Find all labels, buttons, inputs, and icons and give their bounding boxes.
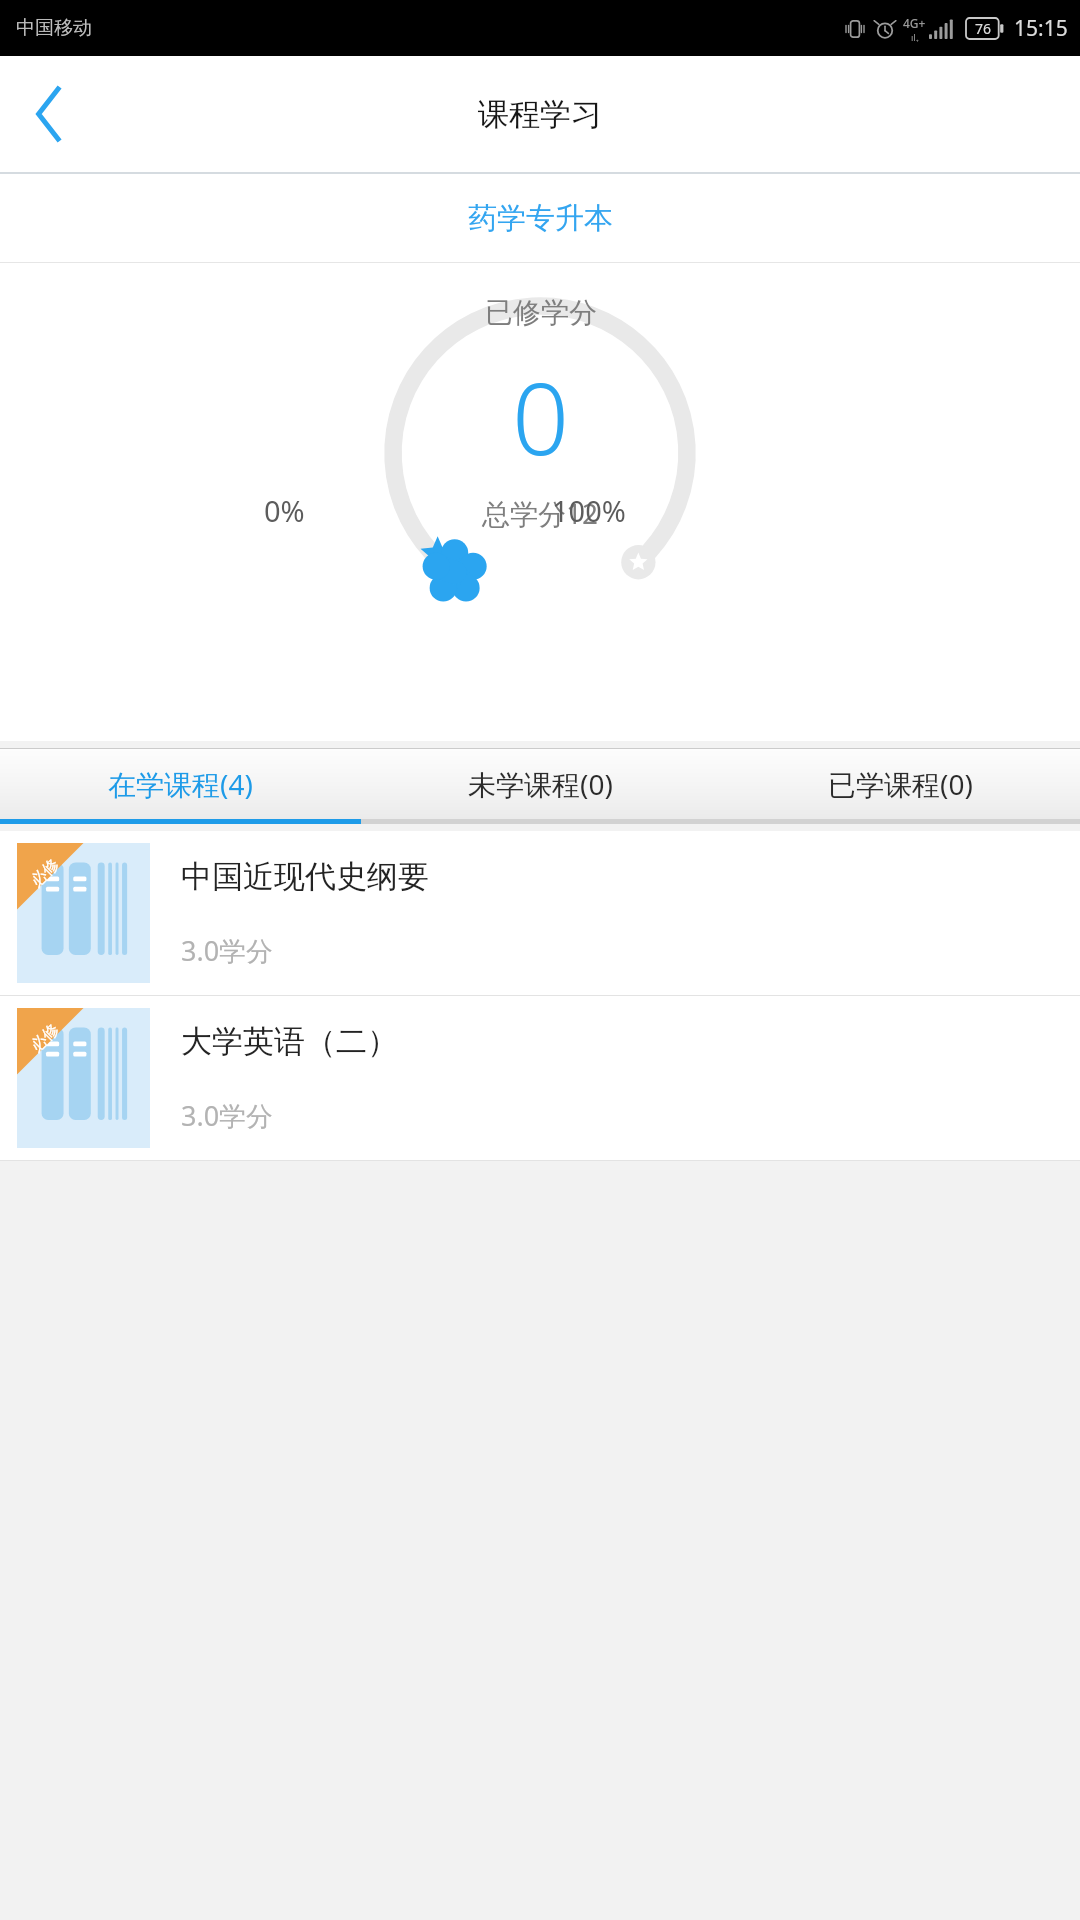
staticText: 3.0学分 bbox=[181, 932, 274, 969]
staticText: 4G+ bbox=[903, 15, 926, 31]
staticText: 已修学分 bbox=[485, 295, 597, 330]
staticText: 药学专升本 bbox=[468, 200, 613, 237]
staticText: 15:15 bbox=[1014, 14, 1068, 43]
staticText: 中国移动 bbox=[16, 16, 92, 40]
staticText: 必修 bbox=[27, 855, 63, 891]
staticText: 已学课程(0) bbox=[828, 765, 973, 803]
button[interactable]: 药学专升本 bbox=[0, 174, 1080, 262]
button[interactable]: Back bbox=[0, 64, 100, 164]
staticText: 3.0学分 bbox=[181, 1097, 274, 1134]
staticText: 76 bbox=[975, 19, 992, 38]
staticText: 必修 bbox=[27, 1020, 63, 1056]
button[interactable]: 必修 bbox=[0, 831, 1080, 995]
staticText: 总学分12 bbox=[482, 494, 599, 532]
staticText: 在学课程(4) bbox=[108, 765, 253, 803]
button[interactable]: 未学课程(0) bbox=[360, 749, 720, 819]
staticText: 0% bbox=[264, 491, 305, 530]
button[interactable]: 在学课程(4) bbox=[0, 749, 360, 819]
staticText: 100% bbox=[552, 491, 626, 530]
button[interactable]: 已学课程(0) bbox=[720, 749, 1080, 819]
staticText: 中国近现代史纲要 bbox=[181, 857, 429, 896]
staticText: 大学英语（二） bbox=[181, 1022, 398, 1061]
staticText: 未学课程(0) bbox=[468, 765, 613, 803]
staticText: 0 bbox=[512, 348, 570, 484]
button[interactable]: 必修 bbox=[0, 996, 1080, 1160]
staticText: ıl₊ bbox=[911, 31, 919, 43]
staticText: 课程学习 bbox=[478, 95, 602, 134]
